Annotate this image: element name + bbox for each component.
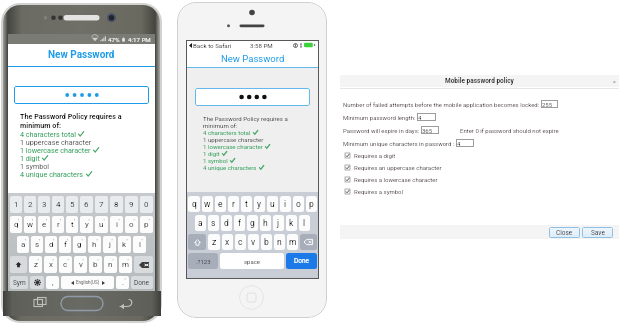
button[interactable]: 6 <box>80 196 93 213</box>
staticText: 4 unique characters <box>203 164 257 171</box>
staticText: o <box>296 199 301 209</box>
button[interactable]: e <box>38 216 50 233</box>
button[interactable]: 0 <box>140 196 153 213</box>
button[interactable]: r <box>52 216 64 233</box>
button[interactable]: g <box>247 215 258 231</box>
button[interactable]: m <box>287 234 298 250</box>
button[interactable]: 1 <box>10 196 22 213</box>
button[interactable]: g <box>73 236 86 253</box>
button[interactable]: 5 <box>66 196 78 213</box>
button[interactable]: l <box>133 236 146 253</box>
button[interactable]: i <box>280 196 291 212</box>
button[interactable]: p <box>140 216 153 233</box>
button[interactable]: a <box>17 236 29 253</box>
button[interactable]: 365 <box>421 126 439 134</box>
button[interactable]: w <box>202 196 213 212</box>
button[interactable]: f <box>59 236 71 253</box>
button[interactable]: b <box>261 234 272 250</box>
button[interactable]: c <box>59 256 72 273</box>
button[interactable]: Requires a digit <box>345 149 396 161</box>
staticText: t <box>71 220 74 229</box>
staticText: r <box>232 199 235 209</box>
staticText: l <box>139 240 141 249</box>
button[interactable]: k <box>286 215 297 231</box>
button[interactable]: Requires an uppercase character <box>345 161 442 173</box>
button[interactable]: 4 <box>52 196 64 213</box>
button[interactable]: 3 <box>38 196 50 213</box>
button[interactable] <box>195 88 310 106</box>
button[interactable]: u <box>95 216 108 233</box>
staticText: English(US) <box>76 280 100 285</box>
button[interactable]: a <box>195 215 206 231</box>
button[interactable]: c <box>235 234 246 250</box>
button[interactable]: Key <box>30 276 44 289</box>
button[interactable]: 8 <box>110 196 123 213</box>
button[interactable]: t <box>241 196 252 212</box>
button[interactable]: 7 <box>95 196 108 213</box>
button[interactable]: x <box>222 234 233 250</box>
button[interactable]: 2 <box>24 196 36 213</box>
button[interactable]: Sym <box>10 276 28 289</box>
button[interactable]: t <box>66 216 78 233</box>
button[interactable]: 4 <box>456 139 474 147</box>
button[interactable]: English(US) <box>61 276 114 289</box>
button[interactable]: b <box>89 256 102 273</box>
button[interactable]: d <box>45 236 57 253</box>
button[interactable]: Done <box>131 276 153 289</box>
staticText: k <box>122 240 127 249</box>
button[interactable]: Requires a symbol <box>345 185 403 197</box>
button[interactable]: x <box>44 256 57 273</box>
staticText: f <box>64 240 67 249</box>
button[interactable]: y <box>80 216 93 233</box>
button[interactable] <box>14 86 149 104</box>
staticText: 47% <box>108 36 120 43</box>
button[interactable]: n <box>274 234 285 250</box>
button[interactable]: r <box>228 196 239 212</box>
button[interactable]: v <box>248 234 259 250</box>
button[interactable]: o <box>293 196 304 212</box>
button[interactable]: j <box>103 236 116 253</box>
button[interactable]: o <box>125 216 138 233</box>
button[interactable]: Requires a lowercase character <box>345 173 438 185</box>
button[interactable]: Done <box>286 253 317 269</box>
button[interactable]: Close <box>549 227 580 238</box>
button[interactable]: Shift <box>188 234 206 250</box>
button[interactable]: h <box>88 236 101 253</box>
button[interactable]: f <box>234 215 245 231</box>
button[interactable]: Save <box>582 227 613 238</box>
button[interactable]: , <box>46 276 59 289</box>
button[interactable]: u <box>267 196 278 212</box>
button[interactable]: . <box>116 276 129 289</box>
button[interactable]: w <box>24 216 36 233</box>
button[interactable]: m <box>119 256 132 273</box>
button[interactable]: Backspace <box>300 234 317 250</box>
button[interactable]: q <box>10 216 22 233</box>
button[interactable]: s <box>208 215 219 231</box>
button[interactable]: q <box>188 196 200 212</box>
button[interactable]: 4 <box>417 113 436 121</box>
button[interactable]: j <box>273 215 284 231</box>
button[interactable]: Home <box>239 285 264 310</box>
button[interactable]: z <box>29 256 42 273</box>
button[interactable]: .?123 <box>188 253 218 269</box>
button[interactable]: 9 <box>125 196 138 213</box>
button[interactable]: n <box>104 256 117 273</box>
button[interactable]: e <box>215 196 226 212</box>
button[interactable]: k <box>118 236 131 253</box>
button[interactable]: Key <box>134 256 153 273</box>
button[interactable]: l <box>299 215 310 231</box>
button[interactable]: 255 <box>541 100 558 108</box>
button[interactable]: d <box>221 215 232 231</box>
button[interactable]: p <box>306 196 317 212</box>
staticText: 3:58 PM <box>250 42 273 49</box>
button[interactable]: z <box>208 234 220 250</box>
button[interactable]: i <box>110 216 123 233</box>
button[interactable]: y <box>254 196 265 212</box>
staticText: » <box>613 78 616 85</box>
staticText: k <box>289 218 294 228</box>
button[interactable]: space <box>220 253 284 269</box>
button[interactable]: s <box>31 236 43 253</box>
button[interactable]: v <box>74 256 87 273</box>
button[interactable]: h <box>260 215 271 231</box>
button[interactable]: Key <box>10 256 27 273</box>
